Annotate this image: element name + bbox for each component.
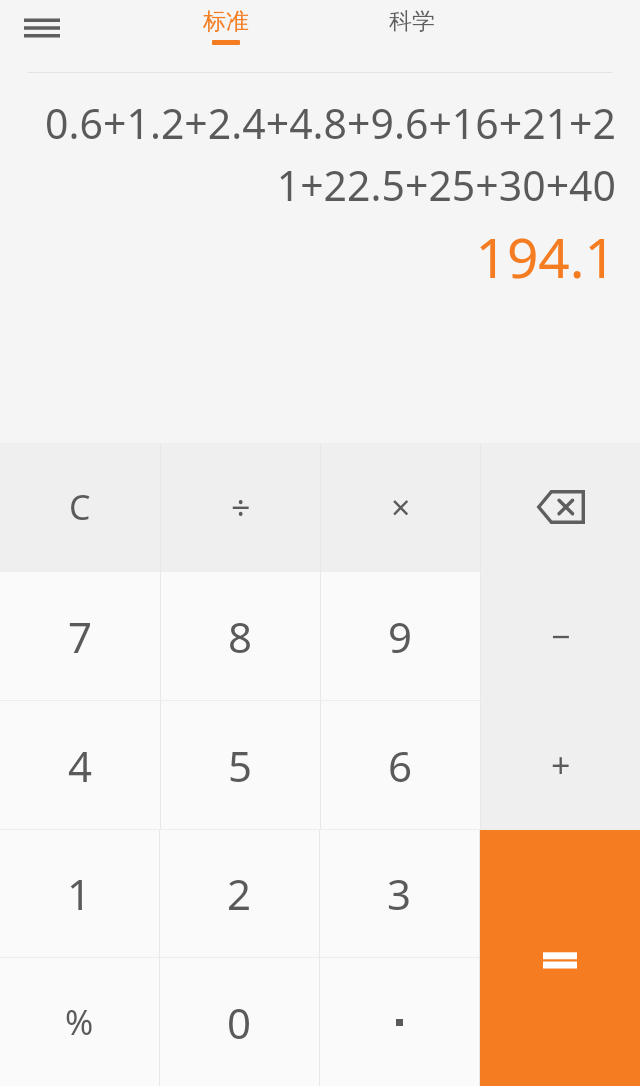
staticText: 194.1 — [28, 219, 616, 294]
button[interactable]: Decimal point — [320, 958, 479, 1086]
staticText: C — [69, 484, 91, 530]
button[interactable]: 0 — [160, 958, 319, 1086]
button[interactable]: Backspace — [481, 443, 640, 571]
staticText: × — [391, 484, 411, 530]
button[interactable]: 科学 — [356, 0, 468, 62]
staticText: 7 — [68, 608, 93, 665]
staticText: + — [551, 742, 571, 788]
staticText: 2 — [227, 865, 252, 922]
button[interactable]: Menu — [10, 4, 74, 52]
button[interactable]: C — [0, 443, 160, 571]
staticText: 科学 — [389, 7, 435, 36]
button[interactable]: 4 — [0, 701, 160, 829]
button[interactable]: 标准 — [170, 0, 282, 62]
button[interactable]: 7 — [0, 572, 160, 700]
button[interactable]: 2 — [160, 830, 319, 957]
staticText: − — [551, 613, 571, 659]
button[interactable]: 6 — [321, 701, 480, 829]
staticText: 5 — [228, 737, 253, 794]
button[interactable]: 3 — [320, 830, 479, 957]
button[interactable]: % — [0, 958, 159, 1086]
staticText: 标准 — [203, 7, 249, 36]
staticText: 6 — [388, 737, 413, 794]
button[interactable]: × — [321, 443, 480, 571]
staticText: 4 — [68, 737, 93, 794]
staticText: 0 — [227, 994, 252, 1051]
staticText: 9 — [388, 608, 413, 665]
button[interactable] — [480, 830, 640, 1086]
button[interactable]: 9 — [321, 572, 480, 700]
staticText: 1 — [67, 865, 92, 922]
staticText: % — [65, 999, 94, 1045]
button[interactable]: + — [481, 701, 640, 829]
staticText: 0.6+1.2+2.4+4.8+9.6+16+21+21+22.5+25+30+… — [28, 95, 616, 213]
button[interactable]: − — [481, 572, 640, 700]
button[interactable]: 1 — [0, 830, 159, 957]
staticText: 8 — [228, 608, 253, 665]
button[interactable]: ÷ — [161, 443, 320, 571]
staticText: 3 — [387, 865, 412, 922]
staticText: ÷ — [231, 484, 251, 530]
button[interactable]: 5 — [161, 701, 320, 829]
button[interactable]: 8 — [161, 572, 320, 700]
